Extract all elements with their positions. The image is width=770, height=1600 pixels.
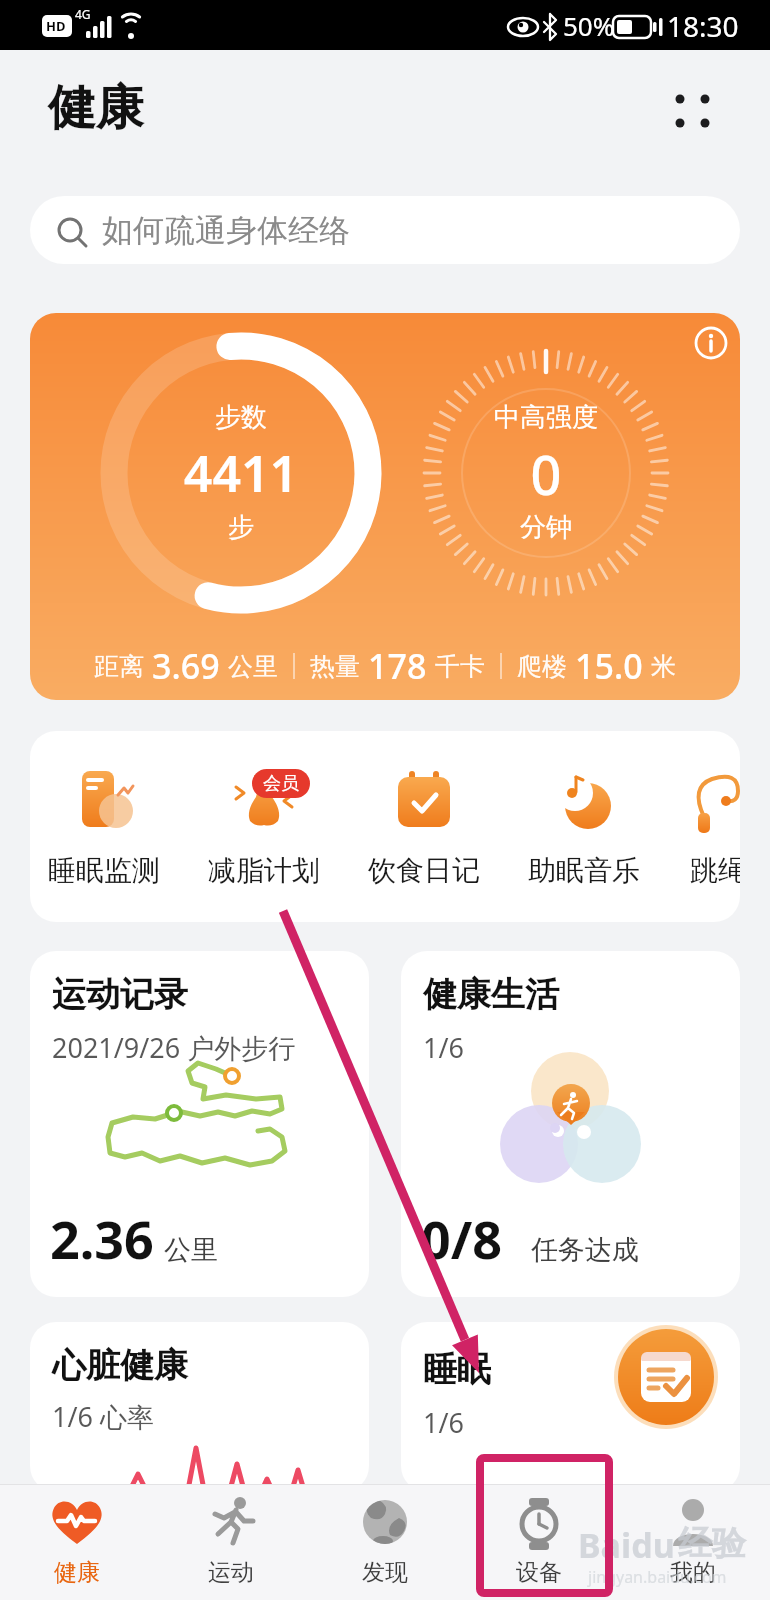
staticText: 心脏健康 [52,1344,188,1387]
staticText: HD [46,17,66,35]
button[interactable]: 健康 [0,1484,154,1600]
staticText: 运动记录 [52,973,188,1016]
staticText: 会员 [263,772,299,795]
staticText: 步数 [141,401,341,434]
staticText: 公里 [164,1233,218,1267]
staticText: 3.69 [152,643,220,689]
button[interactable]: 步数 [30,313,740,700]
staticText: 经验 [678,1522,746,1565]
staticText: 步 [141,511,341,544]
button[interactable]: 减脂计划 [199,761,329,896]
staticText: 2.36 [50,1203,154,1274]
staticText: 15.0 [575,643,643,689]
button[interactable]: 设备 [462,1484,616,1600]
staticText: 我的 [616,1558,770,1587]
staticText: 2021/9/26 户外步行 [52,1029,296,1066]
staticText: 距离 [94,651,144,682]
button[interactable]: 运动记录 [30,951,369,1297]
staticText: 千卡 [435,651,485,682]
button[interactable] [666,84,718,136]
staticText: 运动 [154,1558,308,1587]
staticText: 50% [563,8,615,43]
staticText: 1/6 [423,1029,464,1066]
staticText: 如何疏通身体经络 [102,211,350,250]
button[interactable]: 我的 [616,1484,770,1600]
button[interactable]: 饮食日记 [359,761,489,896]
staticText: 发现 [308,1558,462,1587]
staticText: 健康生活 [423,973,559,1016]
staticText: 睡眠监测 [39,853,169,888]
staticText: 1/6 心率 [52,1398,154,1435]
button[interactable]: 健康生活 [401,951,740,1297]
staticText: 4G [75,6,91,22]
staticText: 减脂计划 [199,853,329,888]
staticText: 爬楼 [517,651,567,682]
staticText: 公里 [228,651,278,682]
button[interactable]: 心脏健康 [30,1322,369,1492]
staticText: 热量 [310,651,360,682]
staticText: 助眠音乐 [519,853,649,888]
button[interactable]: 运动 [154,1484,308,1600]
staticText: 睡眠 [423,1348,491,1391]
staticText: 0/8 [421,1203,503,1274]
staticText: 健康 [48,78,144,138]
staticText: 饮食日记 [359,853,489,888]
staticText: 4411 [141,439,341,507]
staticText: 跳绳 [653,853,740,888]
staticText: 0 [446,437,646,511]
staticText: Baidu [578,1522,675,1568]
staticText: 1/6 [423,1404,464,1441]
staticText: 178 [368,643,427,689]
staticText: jingyan.baidu.com [588,1566,727,1588]
staticText: 米 [651,651,676,682]
staticText: 中高强度 [446,401,646,434]
button[interactable]: 发现 [308,1484,462,1600]
staticText: 任务达成 [531,1233,639,1267]
button[interactable]: 助眠音乐 [519,761,649,896]
staticText: 健康 [0,1558,154,1587]
staticText: 设备 [462,1558,616,1587]
button[interactable]: 睡眠 [401,1322,740,1492]
button[interactable]: 如何疏通身体经络 [30,196,740,264]
staticText: 18:30 [667,7,739,45]
button[interactable]: 睡眠监测 [39,761,169,896]
staticText: 分钟 [446,511,646,544]
button[interactable]: 跳绳 [653,761,740,896]
